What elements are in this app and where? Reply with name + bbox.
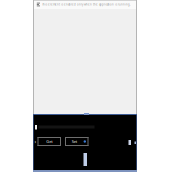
staticText: This element is enabled only when the ap… — [42, 3, 131, 6]
staticText: › — [34, 138, 36, 145]
button[interactable]: Set — [65, 137, 88, 146]
staticText: Get — [46, 139, 52, 144]
button[interactable]: Get — [37, 137, 61, 146]
staticText: Set — [72, 139, 77, 144]
